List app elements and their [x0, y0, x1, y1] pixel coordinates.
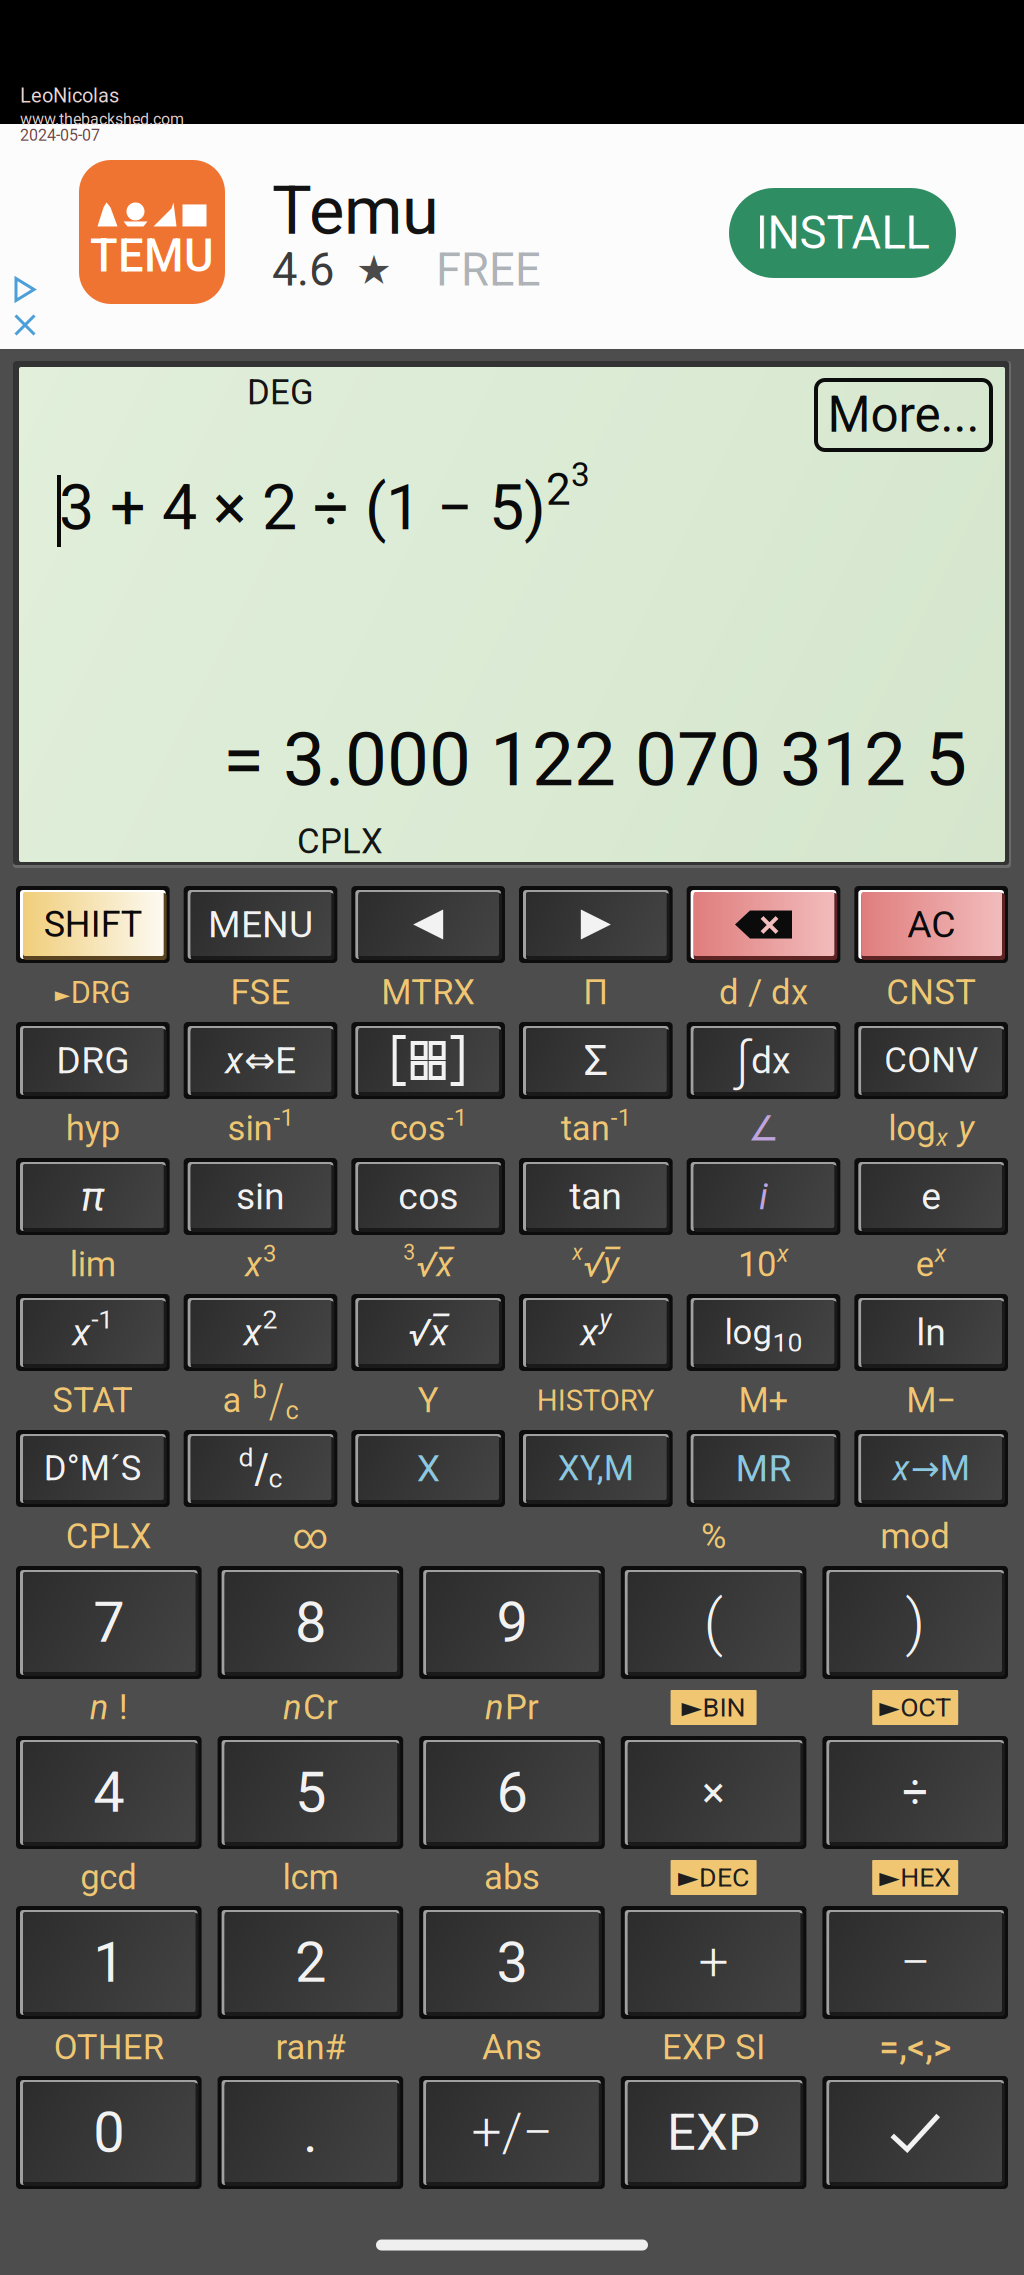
- staticText: More...: [827, 386, 979, 444]
- button[interactable]: i: [687, 1158, 840, 1235]
- button[interactable]: Fraction d over c: [184, 1430, 337, 1507]
- button[interactable]: AC: [854, 886, 1008, 963]
- button[interactable]: Degrees minutes seconds: [16, 1430, 170, 1507]
- staticText: x: [225, 1039, 243, 1082]
- button[interactable]: Matrix: [351, 1022, 505, 1099]
- button[interactable]: More...: [816, 380, 991, 450]
- staticText: Σ: [584, 1035, 608, 1085]
- button[interactable]: Sigma: [519, 1022, 673, 1099]
- staticText: 1: [93, 1930, 124, 1995]
- button[interactable]: X: [351, 1430, 505, 1507]
- staticText: Y: [418, 1380, 439, 1421]
- button[interactable]: CONV: [854, 1022, 1008, 1099]
- button[interactable]: sin: [184, 1158, 337, 1235]
- button[interactable]: e: [854, 1158, 1008, 1235]
- staticText: ∠: [748, 1108, 779, 1149]
- staticText: D°M´S: [44, 1448, 142, 1489]
- staticText: -1: [273, 1103, 293, 1131]
- button[interactable]: cos: [351, 1158, 505, 1235]
- staticText: INSTALL: [755, 206, 929, 259]
- staticText: ∞: [292, 1516, 328, 1557]
- button[interactable]: 0: [16, 2076, 202, 2189]
- staticText: x: [245, 1244, 262, 1285]
- staticText: π: [81, 1172, 105, 1221]
- button[interactable]: x inverse: [16, 1294, 170, 1371]
- button[interactable]: Close parenthesis: [822, 1566, 1008, 1679]
- staticText: cos: [398, 1175, 458, 1218]
- button[interactable]: Temu: [272, 174, 692, 294]
- button[interactable]: Open parenthesis: [621, 1566, 806, 1679]
- staticText: √y̅: [583, 1244, 619, 1285]
- staticText: +/−: [471, 2101, 552, 2164]
- button[interactable]: DRG: [16, 1022, 170, 1099]
- staticText: %: [701, 1516, 726, 1557]
- button[interactable]: Store to memory: [854, 1430, 1008, 1507]
- staticText: ►DEC: [678, 1862, 749, 1893]
- staticText: x: [935, 1239, 947, 1267]
- staticText: ∫: [736, 1029, 750, 1092]
- staticText: 0: [93, 2100, 124, 2165]
- staticText: x: [72, 1311, 90, 1354]
- staticText: FREE: [392, 243, 541, 296]
- button[interactable]: Integral dx: [687, 1022, 840, 1099]
- button[interactable]: ln: [854, 1294, 1008, 1371]
- button[interactable]: MR: [687, 1430, 840, 1507]
- button[interactable]: Plus: [621, 1906, 806, 2019]
- button[interactable]: 3: [419, 1906, 605, 2019]
- button[interactable]: tan: [519, 1158, 673, 1235]
- button[interactable]: Change sign: [419, 2076, 605, 2189]
- button[interactable]: Decimal point: [218, 2076, 403, 2189]
- staticText: gcd: [80, 1857, 137, 1898]
- staticText: CPLX: [297, 821, 383, 862]
- button[interactable]: 5: [218, 1736, 403, 1849]
- staticText: sin: [227, 1108, 272, 1149]
- button[interactable]: Divide: [822, 1736, 1008, 1849]
- button[interactable]: 4: [16, 1736, 202, 1849]
- button[interactable]: MENU: [184, 886, 337, 963]
- button[interactable]: x squared: [184, 1294, 337, 1371]
- button[interactable]: 9: [419, 1566, 605, 1679]
- staticText: Ans: [482, 2027, 542, 2068]
- staticText: hyp: [66, 1108, 120, 1149]
- button[interactable]: 1: [16, 1906, 202, 2019]
- button[interactable]: SHIFT: [16, 886, 170, 963]
- staticText: c: [285, 1396, 298, 1425]
- staticText: EXP SI: [662, 2027, 765, 2068]
- staticText: lim: [70, 1244, 116, 1285]
- button[interactable]: 6: [419, 1736, 605, 1849]
- staticText: MR: [735, 1447, 791, 1490]
- button[interactable]: Minus: [822, 1906, 1008, 2019]
- button[interactable]: Backspace: [687, 886, 840, 963]
- button[interactable]: Cursor right: [519, 886, 673, 963]
- button[interactable]: x to the y: [519, 1294, 673, 1371]
- button[interactable]: x exchange E: [184, 1022, 337, 1099]
- button[interactable]: 8: [218, 1566, 403, 1679]
- button[interactable]: INSTALL: [729, 188, 956, 278]
- button[interactable]: Cursor left: [351, 886, 505, 963]
- staticText: 2: [262, 1304, 277, 1335]
- button[interactable]: 7: [16, 1566, 202, 1679]
- staticText: c: [268, 1463, 282, 1494]
- staticText: mod: [880, 1516, 950, 1557]
- button[interactable]: Pi: [16, 1158, 170, 1235]
- button[interactable]: EXP: [621, 2076, 806, 2189]
- button[interactable]: XY,M: [519, 1430, 673, 1507]
- staticText: M−: [906, 1380, 956, 1421]
- staticText: ran#: [275, 2027, 345, 2068]
- staticText: lcm: [282, 1857, 338, 1898]
- button[interactable]: Equals: [822, 2076, 1008, 2189]
- staticText: n: [485, 1687, 504, 1728]
- staticText: M+: [738, 1380, 788, 1421]
- staticText: ►HEX: [879, 1862, 951, 1893]
- staticText: n: [90, 1687, 109, 1728]
- button[interactable]: 2: [218, 1906, 403, 2019]
- staticText: dx: [751, 1039, 791, 1082]
- staticText: ►: [55, 983, 70, 1006]
- button[interactable]: Multiply: [621, 1736, 806, 1849]
- staticText: →M: [911, 1448, 970, 1489]
- staticText: 6: [496, 1760, 527, 1825]
- button[interactable]: log base 10: [687, 1294, 840, 1371]
- staticText: DEG: [247, 372, 314, 413]
- staticText: log: [724, 1312, 771, 1353]
- button[interactable]: Square root: [351, 1294, 505, 1371]
